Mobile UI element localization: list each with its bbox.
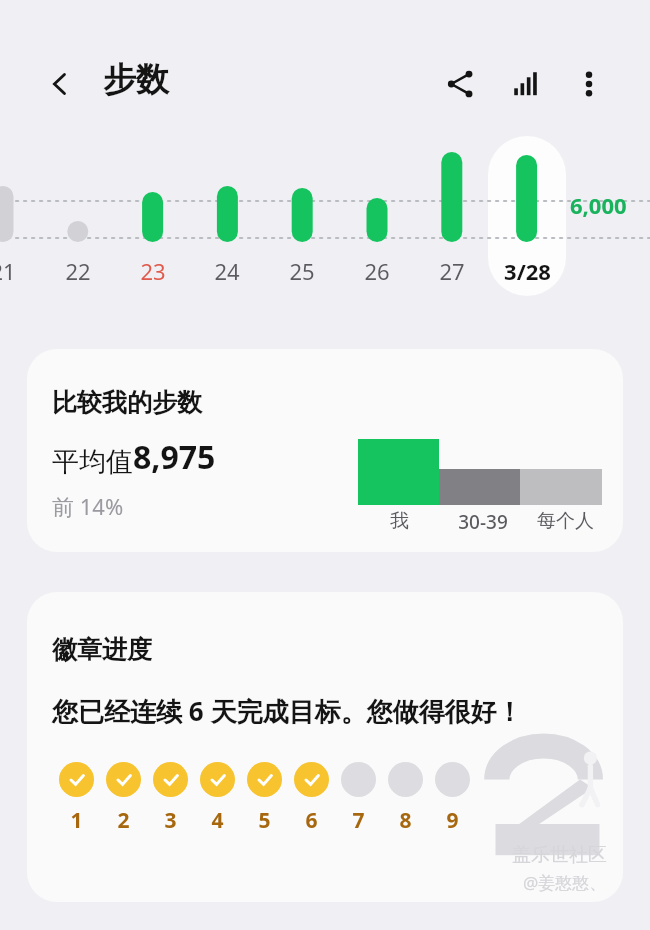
staticText: @姜憨憨、: [523, 871, 607, 894]
staticText: 9: [446, 806, 459, 835]
staticText: 2: [117, 806, 130, 835]
button[interactable]: 26: [337, 253, 417, 289]
button[interactable]: 3: [147, 762, 194, 835]
staticText: 6: [305, 806, 318, 835]
staticText: 前 14%: [52, 491, 124, 521]
button[interactable]: 3/28: [487, 253, 567, 289]
staticText: 22: [65, 256, 91, 286]
staticText: 徽章进度: [52, 634, 152, 665]
button[interactable]: 5: [241, 762, 288, 835]
staticText: 步数: [103, 59, 169, 101]
staticText: 26: [364, 256, 390, 286]
button[interactable]: 25: [262, 253, 342, 289]
staticText: 5: [258, 806, 271, 835]
button[interactable]: 徽章进度: [27, 592, 623, 902]
button[interactable]: 7: [335, 762, 382, 835]
staticText: 您已经连续 6 天完成目标。您做得很好！: [52, 693, 523, 729]
button[interactable]: Share: [434, 58, 486, 110]
staticText: 8,975: [133, 435, 216, 479]
button[interactable]: Chart: [500, 58, 552, 110]
staticText: 30-39: [458, 509, 508, 535]
staticText: 每个人: [537, 509, 594, 533]
button[interactable]: More options: [563, 58, 615, 110]
staticText: 8: [399, 806, 412, 835]
staticText: 25: [289, 256, 315, 286]
staticText: 盖乐世社区: [512, 843, 607, 867]
staticText: 3/28: [504, 256, 551, 286]
staticText: 21: [0, 256, 16, 286]
button[interactable]: 24: [187, 253, 267, 289]
button[interactable]: 9: [429, 762, 476, 835]
button[interactable]: 8: [382, 762, 429, 835]
button[interactable]: 比较我的步数: [27, 349, 623, 552]
button[interactable]: [488, 136, 566, 296]
staticText: 27: [439, 256, 465, 286]
staticText: 3: [164, 806, 177, 835]
staticText: 23: [140, 256, 166, 286]
button[interactable]: 2: [100, 762, 147, 835]
staticText: 我: [390, 509, 409, 533]
button[interactable]: 4: [194, 762, 241, 835]
staticText: 比较我的步数: [52, 387, 202, 418]
staticText: 平均值: [52, 445, 133, 479]
button[interactable]: 22: [38, 253, 118, 289]
staticText: 7: [352, 806, 365, 835]
staticText: 1: [70, 806, 83, 835]
button[interactable]: 21: [0, 253, 43, 289]
staticText: 6,000: [570, 190, 627, 220]
button[interactable]: 27: [412, 253, 492, 289]
button[interactable]: 6: [288, 762, 335, 835]
button[interactable]: 23: [113, 253, 193, 289]
staticText: 4: [211, 806, 224, 835]
staticText: 24: [214, 256, 240, 286]
button[interactable]: Back: [34, 58, 86, 110]
button[interactable]: 1: [53, 762, 100, 835]
